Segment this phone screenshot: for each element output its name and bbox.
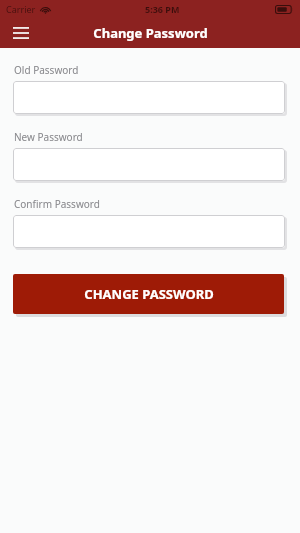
button[interactable]	[13, 215, 285, 248]
staticText: CHANGE PASSWORD	[84, 285, 214, 303]
button[interactable]: CHANGE PASSWORD	[13, 274, 284, 314]
staticText: Confirm Password	[14, 197, 100, 211]
staticText: Carrier	[6, 3, 36, 15]
staticText: 5:36 PM	[145, 3, 180, 15]
staticText: New Password	[14, 130, 83, 144]
staticText: Change Password	[93, 24, 208, 42]
button[interactable]: Menu	[8, 20, 34, 46]
staticText: Old Password	[14, 63, 79, 77]
button[interactable]	[13, 148, 285, 181]
button[interactable]	[13, 81, 285, 114]
